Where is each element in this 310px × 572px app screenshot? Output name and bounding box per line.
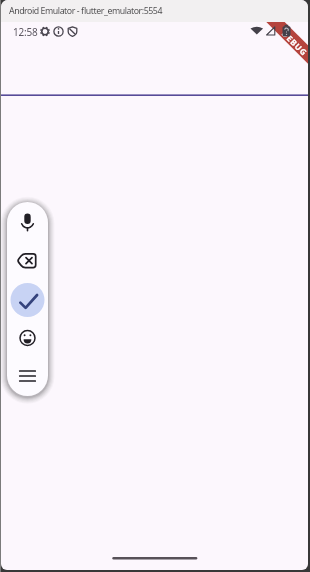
button[interactable] — [7, 279, 48, 319]
button[interactable] — [7, 202, 48, 240]
staticText: 12:58 — [13, 25, 38, 39]
staticText: Android Emulator - flutter_emulator:5554 — [9, 5, 162, 17]
button[interactable] — [7, 319, 48, 357]
staticText: DEBUG — [280, 28, 308, 58]
button[interactable] — [7, 240, 48, 279]
button[interactable] — [7, 357, 48, 396]
